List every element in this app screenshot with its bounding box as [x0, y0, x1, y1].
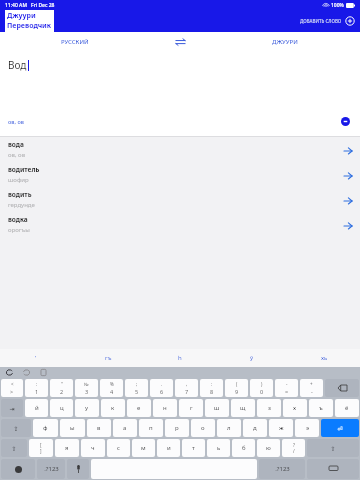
staticText: №: [84, 381, 89, 387]
button[interactable]: <: [1, 379, 23, 397]
button[interactable]: д: [243, 419, 267, 437]
button[interactable]: водитель: [0, 162, 360, 187]
button[interactable]: а: [113, 419, 137, 437]
staticText: 2: [60, 388, 64, 395]
button[interactable]: Повторить: [22, 368, 31, 377]
button[interactable]: п: [139, 419, 163, 437]
staticText: с: [117, 444, 120, 452]
button[interactable]: Shift: [1, 439, 27, 457]
button[interactable]: Цифры: [259, 459, 305, 479]
button[interactable]: х: [283, 399, 307, 417]
button[interactable]: Удалить: [325, 379, 359, 397]
button[interactable]: ш: [205, 399, 229, 417]
button[interactable]: е: [127, 399, 151, 417]
button[interactable]: гъ: [72, 349, 144, 367]
staticText: 4: [110, 388, 114, 395]
button[interactable]: я: [55, 439, 79, 457]
button[interactable]: Вставить: [39, 368, 48, 377]
button[interactable]: Озвучить: [338, 114, 352, 128]
button[interactable]: Сменить язык: [1, 459, 35, 479]
staticText: ;: [136, 381, 138, 387]
button[interactable]: с: [107, 439, 130, 457]
button[interactable]: н: [153, 399, 177, 417]
button[interactable]: щ: [231, 399, 255, 417]
button[interactable]: ъ: [309, 399, 333, 417]
button[interactable]: ч: [81, 439, 105, 457]
button[interactable]: №: [75, 379, 98, 397]
button[interactable]: ?: [282, 439, 305, 457]
button[interactable]: ё: [335, 399, 359, 417]
button[interactable]: Джуури: [7, 11, 52, 31]
button[interactable]: %: [100, 379, 123, 397]
button[interactable]: ц: [50, 399, 73, 417]
button[interactable]: Tab: [1, 399, 23, 417]
staticText: 3: [85, 388, 89, 395]
staticText: водить: [8, 190, 32, 199]
button[interactable]: Shift: [307, 439, 359, 457]
button[interactable]: ж: [269, 419, 293, 437]
staticText: ов, ов: [8, 118, 24, 125]
button[interactable]: ы: [60, 419, 85, 437]
button[interactable]: у: [75, 399, 99, 417]
button[interactable]: водка: [0, 212, 360, 237]
button[interactable]: :: [200, 379, 223, 397]
button[interactable]: л: [217, 419, 241, 437]
button[interactable]: б: [232, 439, 255, 457]
button[interactable]: Скрыть клавиатуру: [307, 459, 359, 479]
button[interactable]: в: [87, 419, 111, 437]
button[interactable]: Отменить: [5, 368, 14, 377]
button[interactable]: ДЖУУРИ: [210, 32, 360, 52]
button[interactable]: ь: [207, 439, 230, 457]
staticText: ДОБАВИТЬ СЛОВО: [300, 18, 342, 24]
button[interactable]: :: [25, 379, 48, 397]
button[interactable]: Caps Lock: [1, 419, 31, 437]
button[interactable]: к: [101, 399, 125, 417]
button[interactable]: ў: [216, 349, 288, 367]
button[interactable]: .: [150, 379, 173, 397]
staticText: ]: [40, 448, 42, 454]
button[interactable]: Диктовка: [67, 459, 89, 479]
button[interactable]: вода: [0, 137, 360, 162]
button[interactable]: ю: [257, 439, 280, 457]
staticText: ⇧: [11, 445, 17, 452]
staticText: ь: [217, 444, 221, 452]
button[interactable]: м: [132, 439, 155, 457]
button[interactable]: хь: [288, 349, 360, 367]
button[interactable]: и: [157, 439, 180, 457]
button[interactable]: г: [179, 399, 203, 417]
button[interactable]: (: [225, 379, 248, 397]
button[interactable]: ,: [175, 379, 198, 397]
button[interactable]: ф: [33, 419, 58, 437]
button[interactable]: й: [25, 399, 48, 417]
button[interactable]: Поменять языки: [167, 32, 193, 52]
staticText: ): [261, 381, 263, 387]
staticText: 100%: [331, 2, 344, 9]
staticText: и: [167, 444, 171, 452]
button[interactable]: Цифры: [37, 459, 65, 479]
button[interactable]: ;: [125, 379, 148, 397]
button[interactable]: т: [182, 439, 205, 457]
staticText: Вод: [8, 58, 27, 72]
button[interactable]: -: [275, 379, 298, 397]
button[interactable]: о: [191, 419, 215, 437]
staticText: ў: [250, 354, 254, 362]
button[interactable]: ): [250, 379, 273, 397]
button[interactable]: р: [165, 419, 189, 437]
button[interactable]: РУССКИЙ: [0, 32, 150, 52]
button[interactable]: һ: [144, 349, 216, 367]
staticText: ф: [43, 424, 48, 432]
button[interactable]: ": [50, 379, 73, 397]
staticText: водка: [8, 215, 28, 224]
button[interactable]: +: [300, 379, 323, 397]
button[interactable]: [: [29, 439, 53, 457]
button[interactable]: водить: [0, 187, 360, 212]
staticText: ч: [91, 444, 95, 452]
button[interactable]: з: [257, 399, 281, 417]
button[interactable]: э: [295, 419, 319, 437]
staticText: >: [10, 388, 14, 395]
button[interactable]: Ввод: [321, 419, 359, 437]
staticText: хь: [321, 354, 328, 362]
button[interactable]: ДОБАВИТЬ СЛОВО: [300, 16, 355, 26]
